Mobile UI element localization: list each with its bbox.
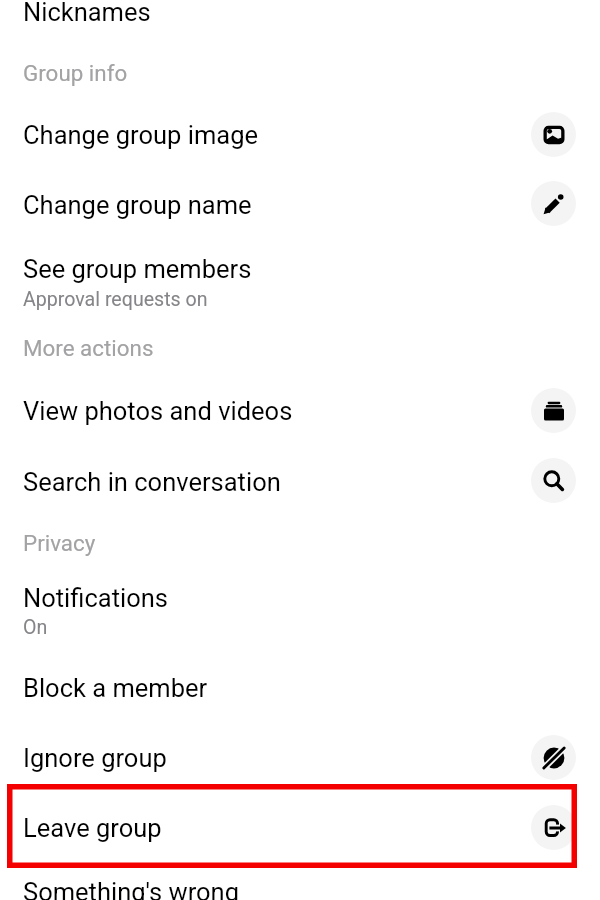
staticText: Approval requests on bbox=[23, 288, 208, 311]
button[interactable]: Search in conversation bbox=[531, 458, 576, 503]
button[interactable]: View photos and videos bbox=[0, 376, 600, 445]
button[interactable]: Ignore group bbox=[0, 722, 600, 792]
button[interactable]: See group members bbox=[0, 239, 600, 320]
staticText: Leave group bbox=[23, 813, 162, 843]
staticText: Change group name bbox=[23, 190, 252, 220]
staticText: Block a member bbox=[23, 673, 208, 703]
button[interactable]: Change group image bbox=[531, 112, 576, 157]
staticText: Ignore group bbox=[23, 743, 167, 773]
staticText: See group members bbox=[23, 254, 252, 284]
staticText: Privacy bbox=[23, 530, 96, 556]
button[interactable]: Leave group bbox=[531, 805, 576, 850]
staticText: Notifications bbox=[23, 583, 168, 613]
button[interactable]: Leave group bbox=[0, 792, 600, 862]
button[interactable]: Notifications bbox=[0, 571, 600, 652]
staticText: Group info bbox=[23, 60, 128, 86]
button[interactable]: View photos and videos bbox=[531, 388, 576, 433]
staticText: On bbox=[23, 616, 48, 639]
button[interactable]: Block a member bbox=[0, 652, 600, 722]
staticText: Something's wrong bbox=[23, 877, 240, 900]
button[interactable]: Change group name bbox=[0, 169, 600, 239]
button[interactable]: Ignore group bbox=[531, 735, 576, 780]
staticText: View photos and videos bbox=[23, 396, 293, 426]
button[interactable]: Nicknames bbox=[0, 0, 600, 46]
button[interactable]: Change group name bbox=[531, 181, 576, 226]
staticText: More actions bbox=[23, 335, 154, 361]
button[interactable]: Search in conversation bbox=[0, 445, 600, 514]
staticText: Nicknames bbox=[23, 0, 151, 27]
button[interactable]: Change group image bbox=[0, 100, 600, 169]
staticText: Change group image bbox=[23, 120, 258, 150]
staticText: Search in conversation bbox=[23, 467, 281, 497]
button[interactable]: Something's wrong bbox=[0, 862, 600, 900]
